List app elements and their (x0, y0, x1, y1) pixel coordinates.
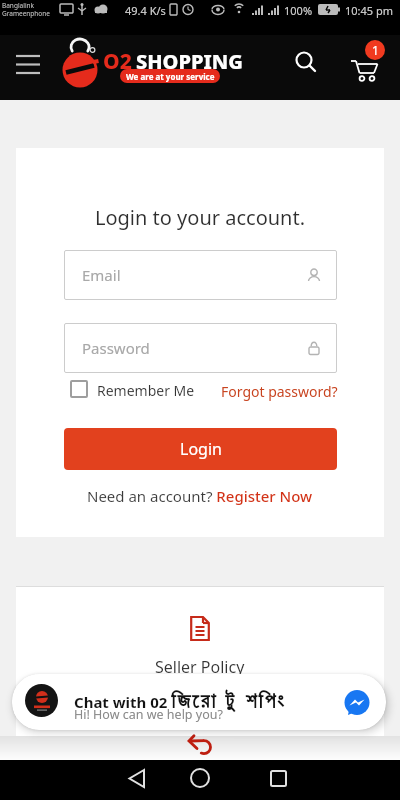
button[interactable] (116, 765, 156, 791)
staticText: Grameenphone (2, 9, 50, 18)
staticText: Forgot password? (221, 382, 338, 401)
staticText: 100% (284, 3, 313, 18)
button[interactable]: Forgot password? (196, 379, 338, 403)
staticText: Chat with 02 জিরো টু শপিং (74, 686, 286, 715)
button[interactable]: Email (64, 250, 337, 300)
button[interactable]: Need an account? Register Now (16, 486, 384, 506)
staticText: Need an account? Register Now (87, 486, 313, 506)
button[interactable]: Login (64, 428, 337, 470)
button[interactable] (290, 46, 322, 78)
staticText: Password (82, 338, 150, 358)
button[interactable] (180, 765, 220, 791)
staticText: Seller Policy (155, 656, 245, 678)
staticText: Login to your account. (16, 204, 384, 231)
staticText: 1 (372, 42, 379, 58)
button[interactable] (258, 765, 298, 791)
staticText: O2 (103, 47, 132, 76)
button[interactable]: Chat with 02 জিরো টু শপিং (12, 674, 386, 730)
staticText: Login (180, 438, 222, 460)
staticText: We are at your service (126, 71, 215, 82)
button[interactable] (70, 380, 88, 398)
button[interactable]: Seller Policy (16, 656, 384, 678)
staticText: SHOPPING (136, 48, 243, 75)
staticText: Email (82, 265, 121, 285)
button[interactable]: Password (64, 323, 337, 373)
staticText: Remember Me (97, 381, 195, 400)
button[interactable] (8, 51, 48, 77)
staticText: Hi! How can we help you? (74, 706, 223, 723)
button[interactable]: 1 (346, 45, 390, 89)
staticText: 10:45 pm (345, 3, 394, 18)
staticText: 49.4 K/s (125, 3, 166, 18)
staticText: Banglalink (2, 1, 35, 10)
